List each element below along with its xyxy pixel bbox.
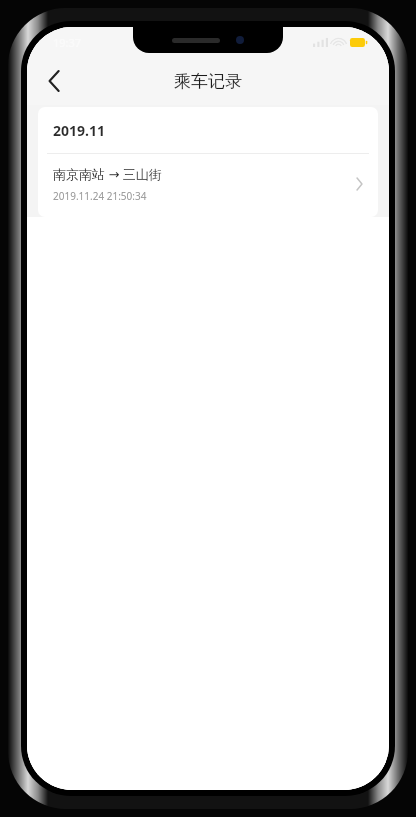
- staticText: 2019.11: [53, 121, 105, 140]
- staticText: 2019.11.24 21:50:34: [53, 189, 147, 203]
- button[interactable]: 南京南站 → 三山街: [38, 154, 378, 217]
- button[interactable]: Back: [33, 60, 75, 102]
- staticText: 乘车记录: [174, 71, 242, 92]
- staticText: 南京南站 → 三山街: [53, 165, 162, 183]
